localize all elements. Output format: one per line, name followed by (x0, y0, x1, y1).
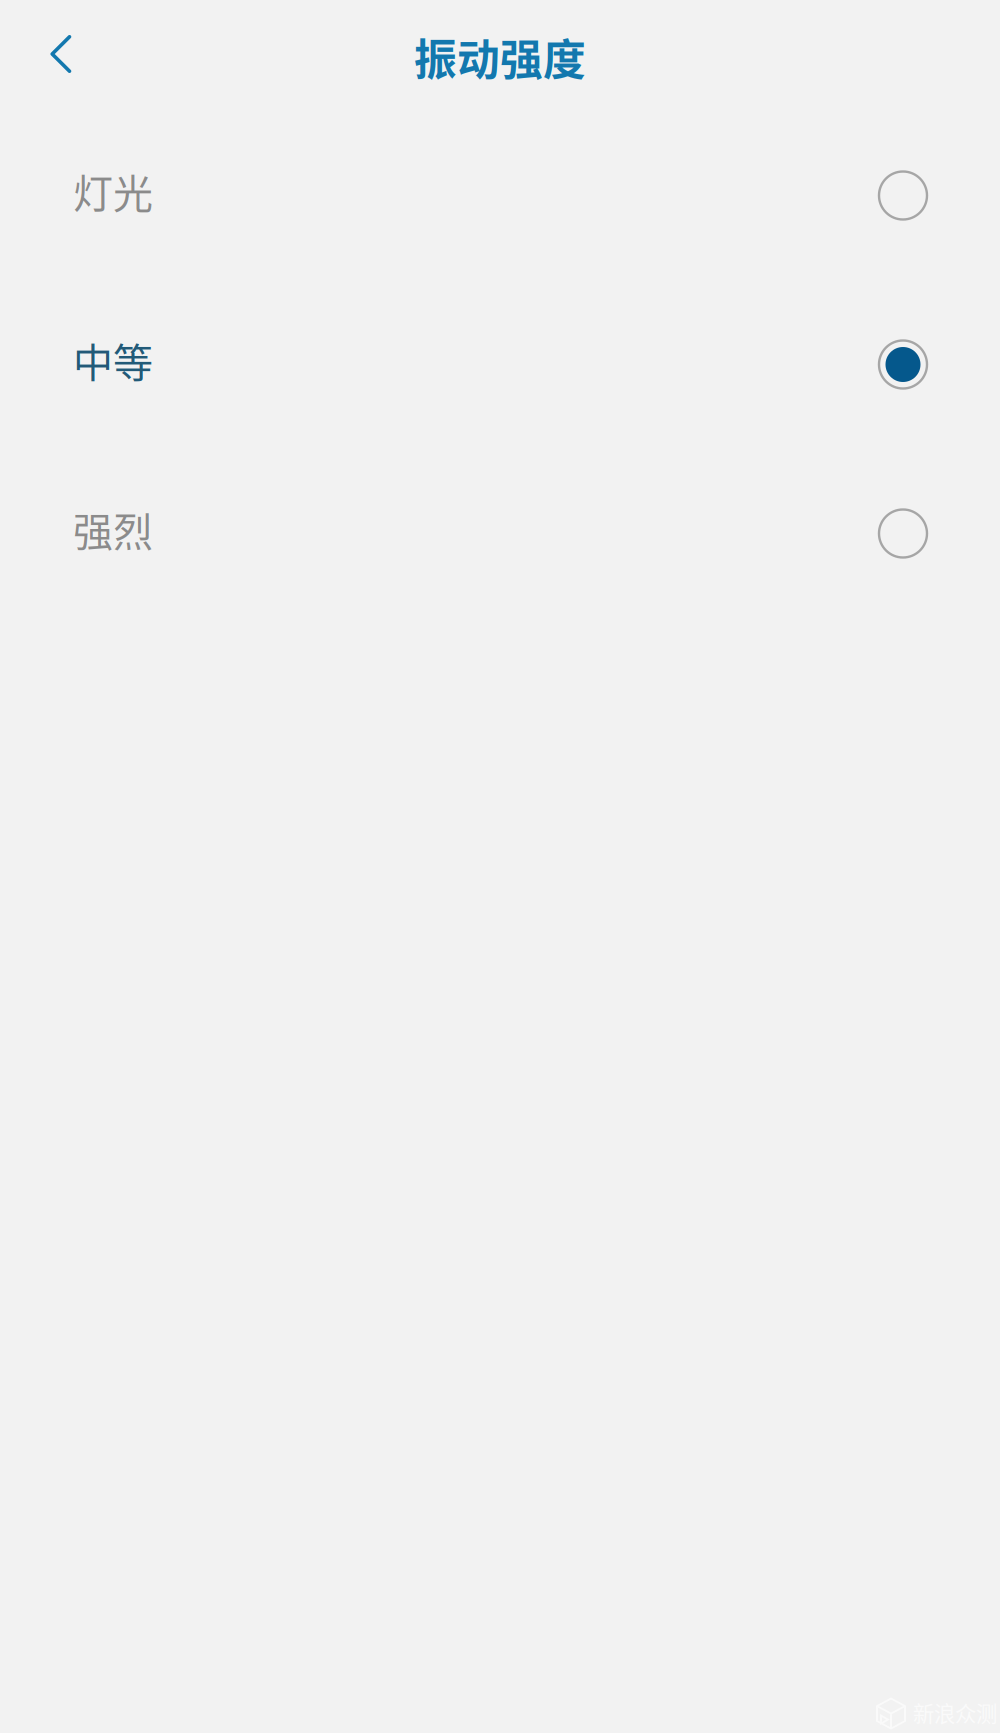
button[interactable]: 强烈 (0, 469, 1000, 589)
button[interactable]: 灯光 (0, 131, 1000, 251)
button[interactable]: Back (0, 10, 101, 104)
staticText: 振动强度 (414, 26, 586, 88)
staticText: 中等 (73, 331, 153, 389)
staticText: 灯光 (73, 162, 153, 220)
staticText: 强烈 (73, 500, 153, 558)
button[interactable]: 中等 (0, 300, 1000, 420)
